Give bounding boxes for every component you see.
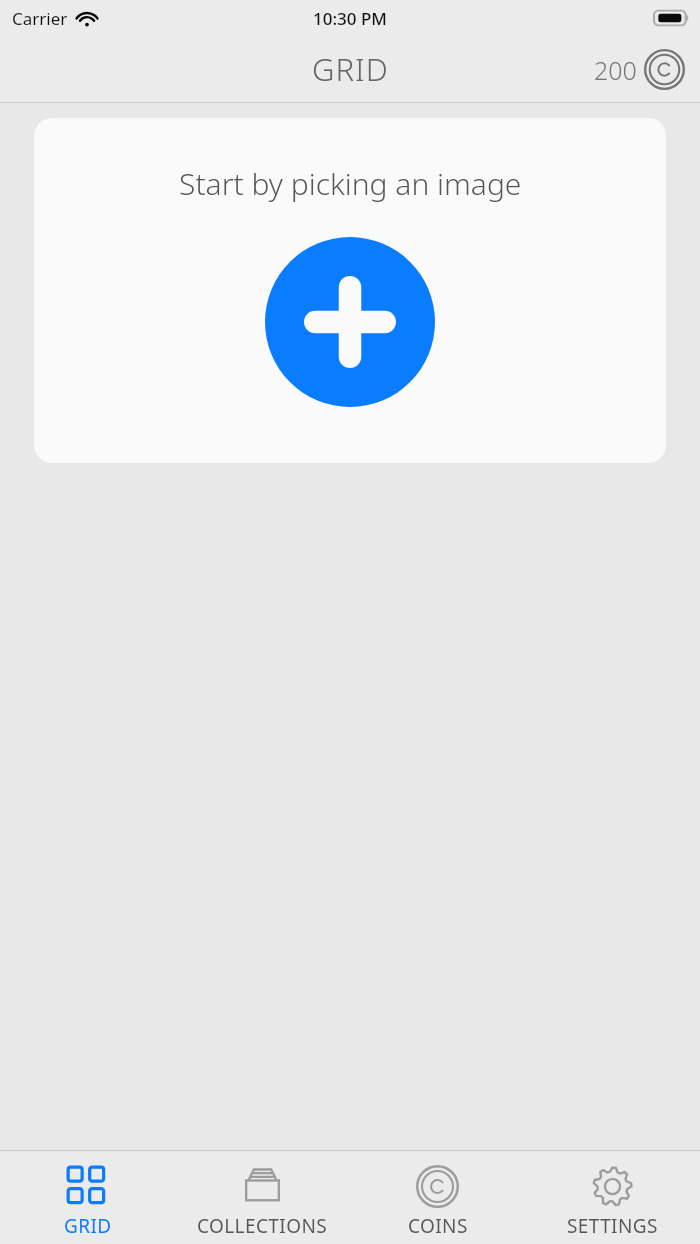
staticText: COLLECTIONS [197,1213,328,1239]
staticText: 200 [594,53,637,87]
staticText: SETTINGS [567,1213,658,1239]
staticText: GRID [312,48,389,90]
staticText: GRID [64,1213,112,1239]
button[interactable]: SETTINGS [525,1151,700,1244]
button[interactable]: GRID [0,1151,175,1244]
staticText: Carrier [12,7,68,30]
staticText: 10:30 PM [313,7,387,30]
button[interactable]: 200 [592,45,687,94]
other: Coins [644,49,685,90]
button[interactable]: COINS [350,1151,525,1244]
button[interactable]: Pick an image [265,237,435,407]
staticText: COINS [408,1213,468,1239]
staticText: Start by picking an image [179,163,522,204]
button[interactable]: COLLECTIONS [175,1151,350,1244]
